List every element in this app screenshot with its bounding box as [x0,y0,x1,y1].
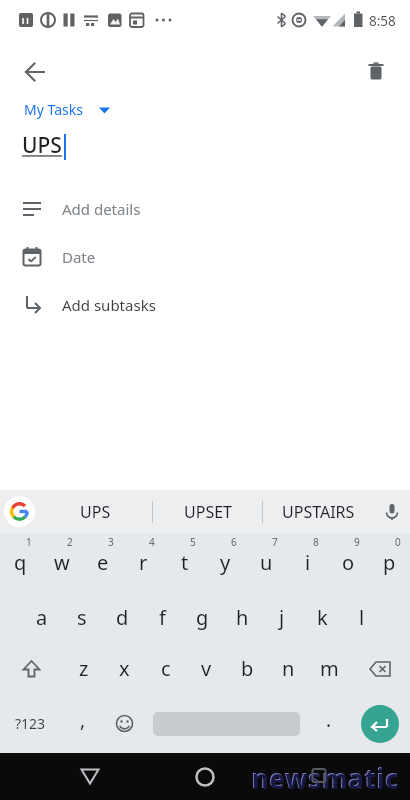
staticText: c [161,655,171,682]
button[interactable]: s [62,591,102,643]
button[interactable]: w [41,533,82,591]
staticText: y [220,549,231,576]
staticText: h [236,604,249,631]
button[interactable] [374,490,410,533]
staticText: newsmatic [251,760,399,795]
button[interactable]: t [164,533,205,591]
staticText: UPS [22,131,62,160]
staticText: i [305,549,311,576]
staticText: r [139,549,148,576]
staticText: z [79,655,89,682]
staticText: t [181,549,189,576]
staticText: UPSTAIRS [282,501,355,523]
staticText: e [97,549,109,576]
button[interactable]: b [227,643,268,694]
staticText: 8 [313,535,319,549]
button[interactable]: v [186,643,227,694]
button[interactable]: Date [0,233,410,281]
staticText: newsmatic [252,761,400,796]
button[interactable] [0,490,38,533]
staticText: n [282,655,295,682]
staticText: UPS [80,501,111,523]
staticText: , [80,707,86,733]
button[interactable]: y [205,533,246,591]
button[interactable]: h [222,591,262,643]
staticText: p [383,549,396,576]
button[interactable]: g [182,591,222,643]
button[interactable] [104,694,145,753]
button[interactable]: u [246,533,287,591]
button[interactable] [145,694,308,753]
staticText: Date [62,247,96,267]
button[interactable] [70,753,110,800]
button[interactable] [356,51,396,91]
button[interactable]: Add details [0,185,410,233]
button[interactable]: f [142,591,182,643]
button[interactable]: UPSTAIRS [263,490,374,533]
button[interactable] [299,753,339,800]
staticText: k [317,604,328,631]
button[interactable]: p [369,533,410,591]
staticText: d [116,604,129,631]
button[interactable]: UPS [38,490,152,533]
button[interactable] [0,643,63,694]
staticText: 6 [231,535,237,549]
button[interactable]: a [22,591,62,643]
button[interactable]: i [287,533,328,591]
button[interactable]: k [302,591,342,643]
staticText: 5 [190,535,196,549]
staticText: x [119,655,130,682]
button[interactable]: . [308,694,349,753]
staticText: 1 [26,535,32,549]
button[interactable]: Add subtasks [0,281,410,329]
staticText: a [36,604,48,631]
staticText: j [279,604,285,631]
staticText: l [359,604,365,631]
button[interactable]: z [63,643,104,694]
button[interactable]: , [61,694,104,753]
staticText: s [77,604,87,631]
button[interactable]: UPSET [153,490,262,533]
staticText: g [196,604,209,631]
staticText: 4 [149,535,155,549]
staticText: ?123 [15,714,46,733]
staticText: q [14,549,27,576]
button[interactable]: e [82,533,123,591]
staticText: 3 [108,535,114,549]
staticText: 2 [67,535,73,549]
staticText: . [326,707,332,733]
button[interactable]: d [102,591,142,643]
button[interactable]: o [328,533,369,591]
button[interactable]: r [123,533,164,591]
staticText: UPSET [184,501,232,523]
staticText: My Tasks [24,100,83,119]
button[interactable]: l [342,591,382,643]
staticText: 7 [272,535,278,549]
button[interactable]: j [262,591,302,643]
button[interactable] [350,643,410,694]
button[interactable] [185,753,225,800]
staticText: 9 [354,535,360,549]
staticText: Add details [62,199,141,219]
button[interactable]: n [268,643,309,694]
button[interactable]: My Tasks [24,98,110,121]
button[interactable]: ?123 [0,694,61,753]
staticText: w [54,549,70,576]
staticText: 8:58 [369,12,396,30]
button[interactable]: x [104,643,145,694]
staticText: m [320,655,339,682]
button[interactable]: c [145,643,186,694]
staticText: 0 [395,535,401,549]
staticText: b [241,655,254,682]
staticText: u [260,549,273,576]
button[interactable] [349,694,410,753]
staticText: Add subtasks [62,295,156,315]
staticText: v [201,655,212,682]
button[interactable]: m [309,643,350,694]
staticText: f [159,604,166,631]
button[interactable]: q [0,533,41,591]
button[interactable] [15,52,55,92]
staticText: o [342,549,355,576]
